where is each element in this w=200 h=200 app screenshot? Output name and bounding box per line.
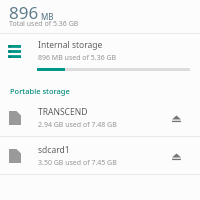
staticText: sdcard1: [38, 144, 70, 156]
staticText: 896: [9, 1, 39, 24]
button[interactable]: TRANSCEND: [0, 99, 200, 136]
button[interactable]: sdcard1: [0, 137, 200, 174]
button[interactable]: Eject TRANSCEND: [166, 108, 186, 128]
staticText: 896 MB used of 5.36 GB: [38, 53, 117, 63]
staticText: MB: [41, 11, 54, 22]
staticText: Portable storage: [10, 86, 70, 96]
staticText: 3.50 GB used of 7.45 GB: [38, 158, 117, 168]
button[interactable]: Internal storage: [0, 34, 200, 81]
staticText: TRANSCEND: [38, 106, 88, 118]
staticText: 2.94 GB used of 7.48 GB: [38, 120, 117, 130]
staticText: Internal storage: [38, 39, 103, 51]
staticText: Total used of 5.36 GB: [9, 19, 79, 29]
button[interactable]: Eject sdcard1: [166, 146, 186, 166]
